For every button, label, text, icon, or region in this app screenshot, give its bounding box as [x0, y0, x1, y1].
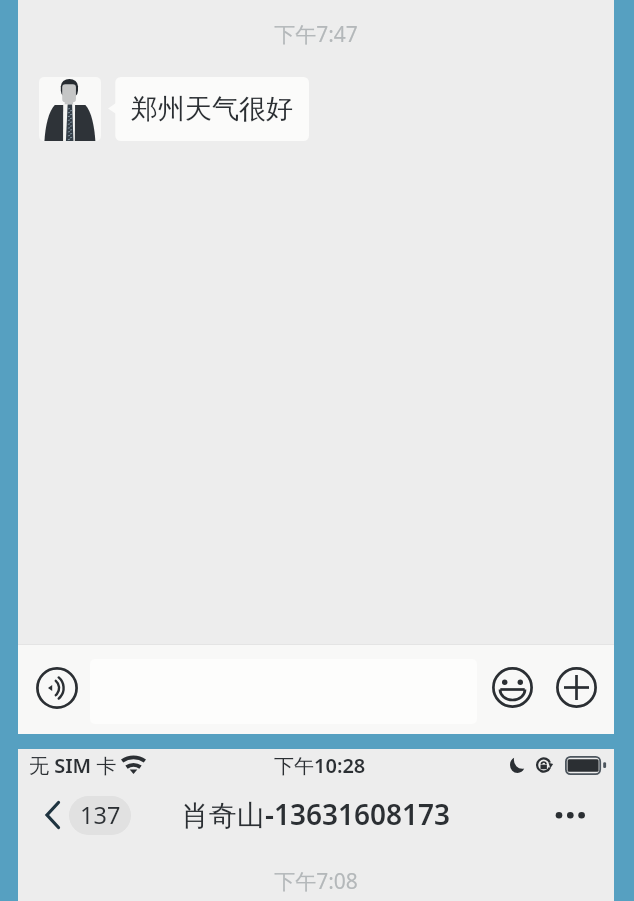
- button[interactable]: 137: [69, 796, 131, 835]
- button[interactable]: More functions: [556, 667, 597, 708]
- staticText: 下午7:47: [274, 20, 358, 49]
- staticText: 下午7:08: [274, 867, 358, 896]
- button[interactable]: More options: [546, 796, 590, 834]
- button[interactable]: Voice message: [36, 667, 78, 709]
- button[interactable]: Contact avatar: [39, 77, 101, 141]
- button[interactable]: 郑州天气很好: [108, 77, 309, 141]
- staticText: 肖奇山-13631608173: [181, 795, 451, 833]
- staticText: 137: [80, 799, 121, 831]
- staticText: 下午10:28: [274, 752, 366, 776]
- staticText: 郑州天气很好: [131, 92, 293, 126]
- button[interactable]: Back: [40, 793, 70, 833]
- staticText: 无 SIM 卡: [29, 752, 117, 779]
- button[interactable]: Emoji: [492, 667, 533, 708]
